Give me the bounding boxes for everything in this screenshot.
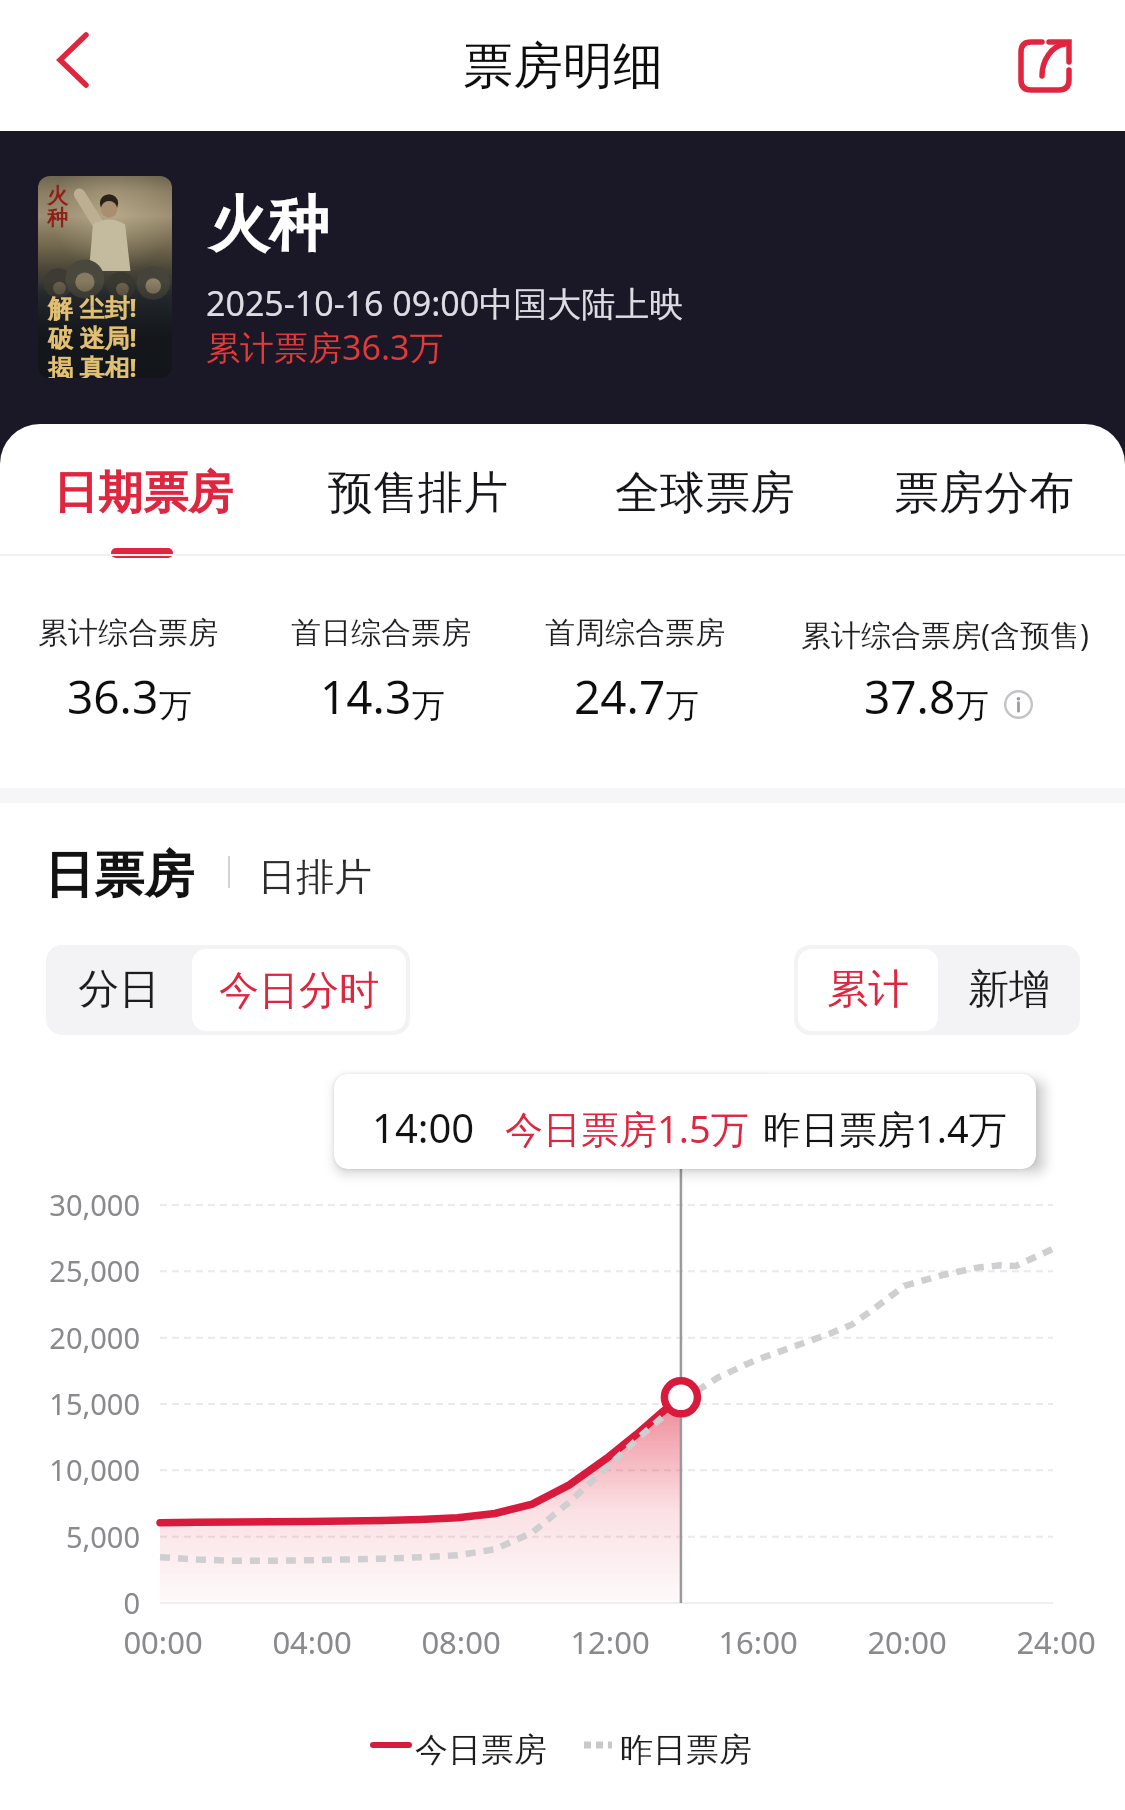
button[interactable]: Share [1003, 24, 1087, 108]
staticText: 08:00 [381, 1621, 541, 1663]
staticText: 日期票房 [53, 465, 233, 522]
staticText: 解 尘封! 破 迷局! 揭 真相! [48, 290, 137, 378]
staticText: 全球票房 [615, 465, 795, 522]
staticText: 日排片 [258, 853, 372, 901]
staticText: 累计票房36.3万 [206, 324, 444, 370]
staticText: 20,000 [3, 1318, 140, 1357]
staticText: 票房明细 [463, 35, 663, 98]
staticText: 昨日票房1.4万 [763, 1102, 1007, 1154]
staticText: 日票房 [44, 844, 194, 907]
staticText: 14.3 [320, 665, 412, 728]
staticText: 16:00 [678, 1621, 838, 1663]
button[interactable]: 累计 [798, 949, 938, 1031]
staticText: 15,000 [3, 1384, 140, 1423]
staticText: 票房分布 [894, 465, 1074, 522]
staticText: 昨日票房 [620, 1729, 752, 1771]
staticText: 万 [159, 685, 192, 727]
staticText: 25,000 [3, 1251, 140, 1290]
staticText: 新增 [968, 964, 1050, 1016]
staticText: 36.3 [67, 665, 159, 728]
staticText: 累计综合票房(含预售) [801, 614, 1089, 655]
staticText: 火 种 [47, 183, 68, 232]
button[interactable]: 今日分时 [192, 949, 406, 1031]
button[interactable]: 日排片 [252, 836, 384, 908]
staticText: 37.8 [864, 665, 956, 728]
button[interactable]: 日票房 [38, 836, 206, 908]
staticText: 04:00 [232, 1621, 392, 1663]
staticText: 万 [412, 685, 445, 727]
staticText: 14:00 [372, 1100, 475, 1154]
button[interactable]: 全球票房 [595, 424, 815, 555]
staticText: 20:00 [827, 1621, 987, 1663]
staticText: 分日 [78, 964, 160, 1016]
staticText: 0 [3, 1583, 140, 1622]
button[interactable]: 新增 [938, 945, 1080, 1035]
button[interactable]: 票房分布 [874, 424, 1094, 555]
staticText: 10,000 [3, 1450, 140, 1489]
staticText: 今日分时 [219, 965, 379, 1015]
staticText: 预售排片 [328, 465, 508, 522]
staticText: 万 [956, 685, 989, 727]
staticText: 5,000 [3, 1517, 140, 1556]
staticText: 24:00 [976, 1621, 1125, 1663]
button[interactable]: 分日 [46, 945, 192, 1035]
staticText: 首周综合票房 [545, 614, 725, 652]
staticText: 累计 [827, 964, 909, 1016]
button[interactable]: 日期票房 [33, 424, 253, 555]
staticText: 今日票房 [415, 1729, 547, 1771]
staticText: 累计综合票房 [38, 614, 218, 652]
staticText: 12:00 [530, 1621, 690, 1663]
staticText: 2025-10-16 09:00中国大陆上映 [206, 280, 684, 326]
button[interactable]: Back [25, 20, 115, 110]
staticText: 30,000 [3, 1185, 140, 1224]
button[interactable]: Info [1004, 690, 1033, 719]
staticText: 24.7 [574, 665, 666, 728]
staticText: 首日综合票房 [291, 614, 471, 652]
staticText: 今日票房1.5万 [505, 1102, 749, 1154]
staticText: 00:00 [83, 1621, 243, 1663]
staticText: 万 [666, 685, 699, 727]
staticText: 火种 [209, 187, 329, 263]
button[interactable]: 预售排片 [308, 424, 528, 555]
